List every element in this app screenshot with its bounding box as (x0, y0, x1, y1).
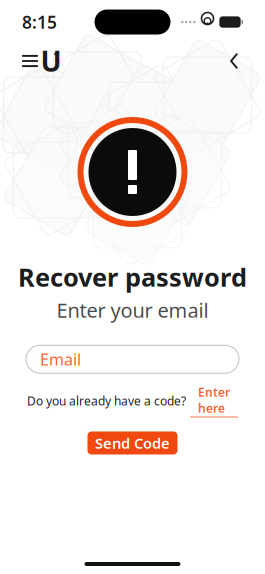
button[interactable]: Menu (12, 41, 70, 81)
button[interactable]: Enter here (190, 384, 238, 417)
staticText: Enter your email (56, 297, 208, 323)
staticText: 8:15 (22, 10, 57, 33)
staticText: U (40, 42, 61, 80)
staticText: Recover password (18, 260, 247, 294)
button[interactable]: Email (26, 345, 239, 373)
staticText: Send Code (95, 433, 170, 453)
button[interactable]: Back (215, 44, 253, 78)
staticText: Enter here (198, 384, 230, 416)
staticText: Do you already have a code? (27, 393, 186, 409)
button[interactable]: Send Code (87, 431, 177, 454)
staticText: Email (40, 349, 81, 370)
